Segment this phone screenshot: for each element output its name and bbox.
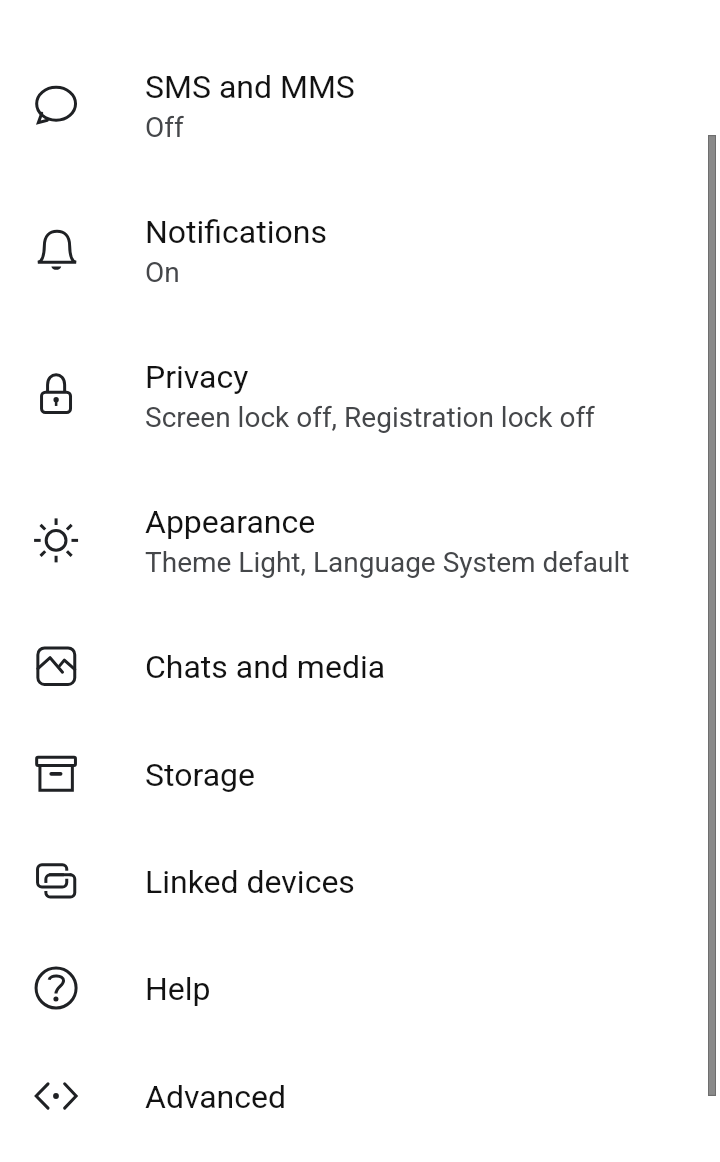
button[interactable]: Appearance [0,466,720,611]
other: Appearance [34,516,80,562]
staticText: Storage [145,756,255,794]
staticText: SMS and MMS [145,68,355,106]
button[interactable]: Storage [0,719,720,826]
staticText: Theme Light, Language System default [145,546,630,579]
button[interactable]: Help [0,933,720,1041]
other: Storage [34,752,80,798]
other: Linked devices [34,859,80,905]
staticText: Linked devices [145,863,355,901]
other: Privacy [34,371,80,417]
staticText: Chats and media [145,648,386,686]
other: Advanced [34,1074,80,1120]
other: Help [34,966,80,1012]
staticText: On [145,256,180,289]
button[interactable]: Linked devices [0,826,720,933]
button[interactable]: Privacy [0,321,720,466]
staticText: Off [145,111,184,144]
other: SMS and MMS [34,81,80,127]
other: Chats and media [34,644,80,690]
staticText: Help [145,970,211,1008]
button[interactable]: Chats and media [0,611,720,719]
staticText: Privacy [145,358,249,396]
staticText: Appearance [145,503,316,541]
other: Notifications [34,226,80,272]
staticText: Notifications [145,213,327,251]
staticText: Advanced [145,1078,287,1116]
button[interactable]: SMS and MMS [0,31,720,176]
button[interactable]: Notifications [0,176,720,321]
button[interactable]: Advanced [0,1041,720,1148]
staticText: Screen lock off, Registration lock off [145,401,595,434]
